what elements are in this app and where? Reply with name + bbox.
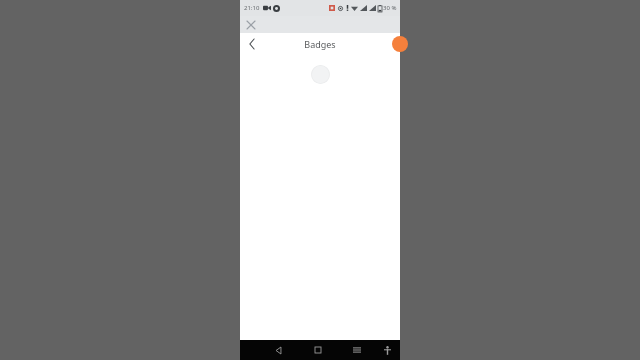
button[interactable]: Add badge <box>392 36 408 52</box>
button[interactable]: Back <box>243 35 261 53</box>
staticText: Badges <box>304 38 336 50</box>
button[interactable]: Accessibility <box>376 340 398 360</box>
staticText: 30 % <box>383 4 397 12</box>
staticText: 21:10 <box>244 4 260 12</box>
button[interactable]: Back <box>258 340 298 360</box>
button[interactable]: Home <box>298 340 337 360</box>
button[interactable]: Recents <box>337 340 376 360</box>
button[interactable]: Close <box>243 17 259 33</box>
